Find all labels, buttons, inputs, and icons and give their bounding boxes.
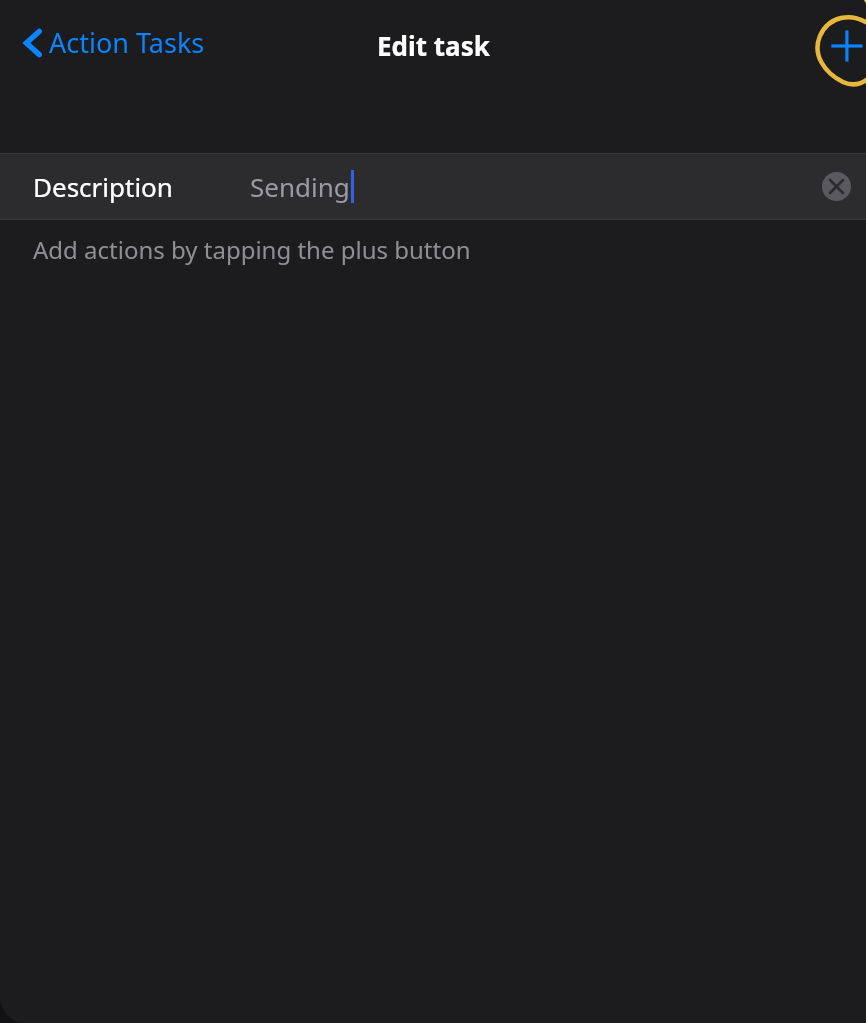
staticText: Sending (250, 169, 350, 204)
button[interactable]: Add action (794, 0, 866, 92)
staticText: Action Tasks (49, 24, 205, 61)
staticText: Add actions by tapping the plus button (33, 233, 471, 266)
staticText: Edit task (377, 28, 490, 63)
button[interactable]: Clear text (812, 162, 861, 211)
staticText: Description (33, 169, 173, 204)
button[interactable]: Action Tasks (10, 18, 217, 67)
button[interactable]: Description (0, 154, 866, 219)
